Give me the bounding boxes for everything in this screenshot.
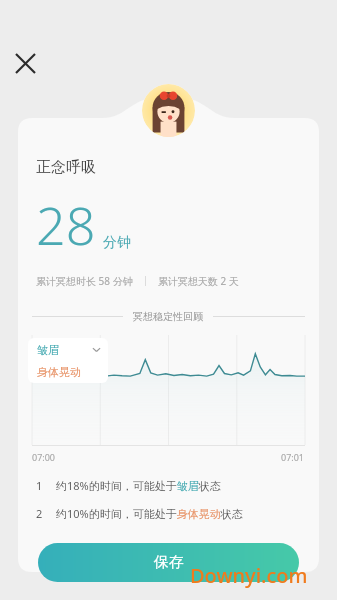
button[interactable]: 皱眉	[28, 338, 108, 361]
staticText: 分钟	[103, 234, 131, 252]
button[interactable]: Close	[6, 44, 44, 82]
staticText: 皱眉	[37, 343, 59, 357]
staticText: 身体晃动	[37, 365, 81, 379]
staticText: 2	[36, 506, 43, 521]
staticText: 累计冥想天数 2 天	[158, 274, 239, 288]
staticText: 正念呼吸	[36, 158, 96, 177]
staticText: Downyi.com	[190, 562, 308, 589]
button[interactable]: 2	[18, 506, 319, 521]
staticText: 约10%的时间，可能处于身体晃动状态	[56, 506, 243, 521]
button[interactable]: 身体晃动	[28, 361, 108, 383]
staticText: 约18%的时间，可能处于皱眉状态	[56, 478, 221, 493]
staticText: 07:00	[32, 451, 56, 463]
button[interactable]: 1	[18, 478, 319, 493]
staticText: 1	[36, 478, 43, 493]
staticText: 07:01	[281, 451, 305, 463]
button[interactable]: 保存	[38, 543, 299, 582]
staticText: 累计冥想时长 58 分钟	[36, 274, 133, 288]
staticText: 冥想稳定性回顾	[133, 310, 203, 323]
staticText: 28	[36, 189, 96, 260]
staticText: 保存	[154, 553, 184, 572]
